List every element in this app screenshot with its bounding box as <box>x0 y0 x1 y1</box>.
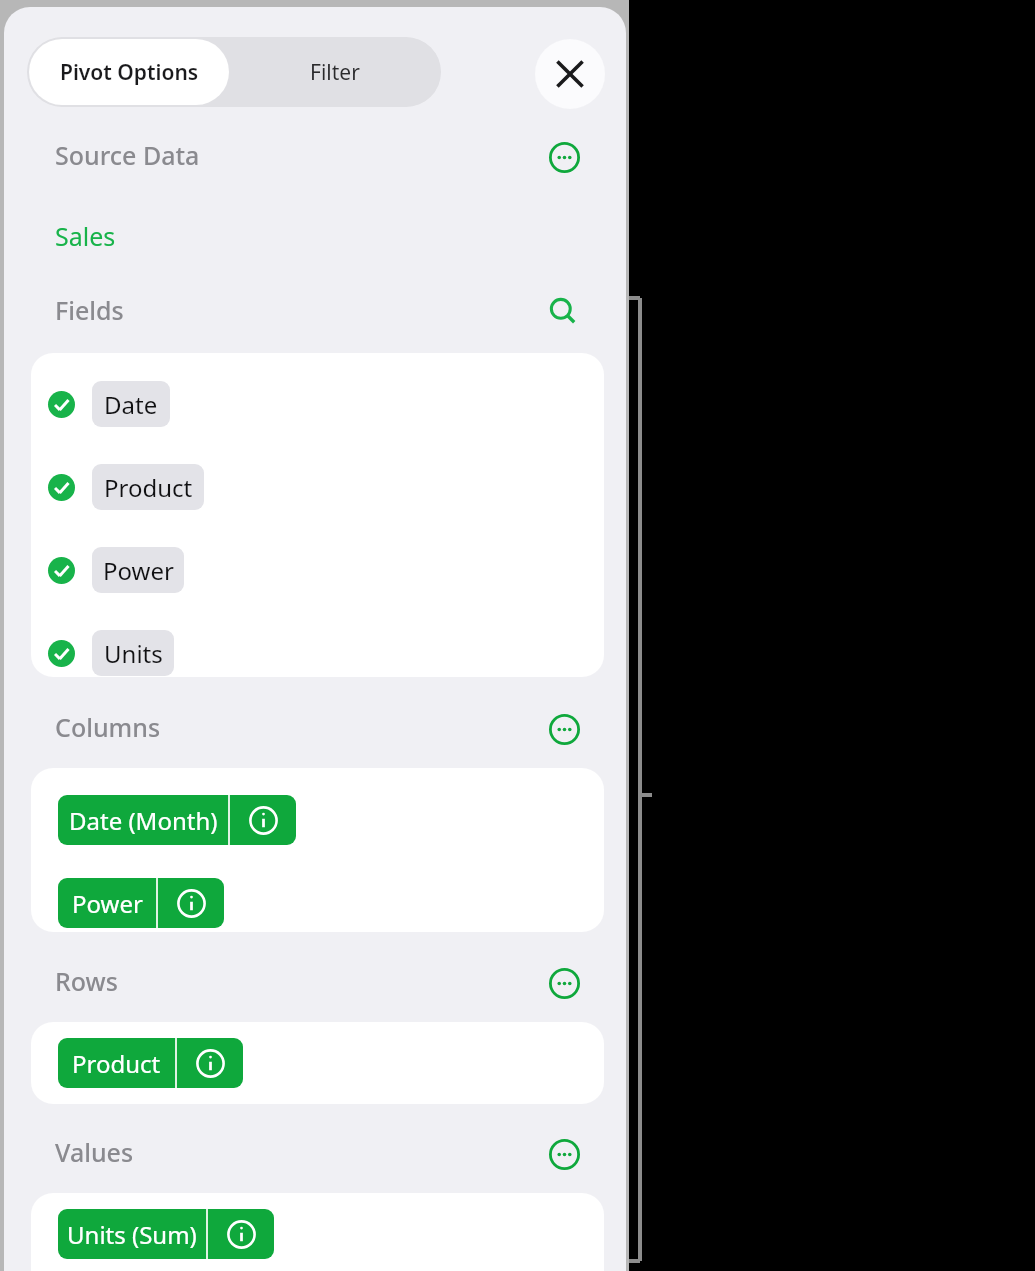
button[interactable]: More options <box>541 134 587 180</box>
button[interactable]: Power <box>58 878 224 928</box>
staticText: Sales <box>55 219 116 253</box>
button[interactable]: More options <box>541 706 587 752</box>
staticText: Filter <box>310 58 360 87</box>
button[interactable]: Product <box>58 1038 243 1088</box>
button[interactable]: Search fields <box>541 289 587 335</box>
button[interactable]: Date <box>31 373 604 435</box>
button[interactable]: Filter <box>231 39 439 105</box>
button[interactable]: More options <box>541 1131 587 1177</box>
button[interactable]: Product <box>31 456 604 518</box>
staticText: Units (Sum) <box>67 1218 197 1251</box>
staticText: Values <box>55 1135 134 1169</box>
staticText: Fields <box>55 293 124 327</box>
staticText: Source Data <box>55 138 200 172</box>
button[interactable]: Units <box>31 622 604 677</box>
staticText: Product <box>104 471 193 504</box>
other: Field info <box>208 1209 274 1259</box>
button[interactable]: Date (Month) <box>58 795 296 845</box>
other: Field info <box>177 1038 243 1088</box>
other: Field info <box>158 878 224 928</box>
other: Field info <box>230 795 296 845</box>
staticText: Power <box>103 554 174 587</box>
button[interactable]: Units (Sum) <box>58 1209 274 1259</box>
button[interactable]: More options <box>541 960 587 1006</box>
staticText: Product <box>72 1047 161 1080</box>
staticText: Rows <box>55 964 118 998</box>
staticText: Power <box>72 887 143 920</box>
staticText: Date <box>104 388 158 421</box>
button[interactable]: Pivot Options <box>29 39 229 105</box>
staticText: Date (Month) <box>69 804 218 837</box>
staticText: Columns <box>55 710 161 744</box>
button[interactable]: Power <box>31 539 604 601</box>
staticText: Units <box>104 637 163 670</box>
staticText: Pivot Options <box>60 58 199 87</box>
button[interactable]: Sales <box>55 219 116 253</box>
button[interactable]: Close <box>535 39 605 109</box>
